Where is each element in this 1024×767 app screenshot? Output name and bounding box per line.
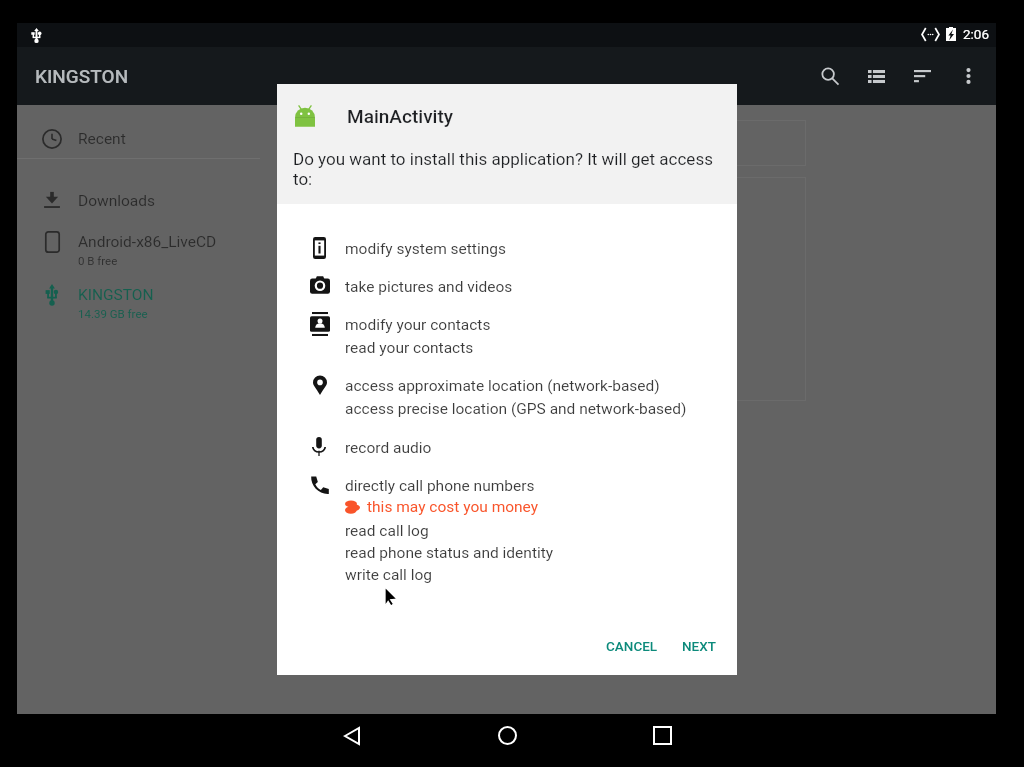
button[interactable]: 1:54 PM [300,177,595,401]
staticText: take pictures and videos [345,278,513,296]
staticText: Volum… [623,137,678,155]
button[interactable]: MainActivity… [300,120,595,166]
button[interactable]: Sort [899,53,945,99]
button[interactable]: Home [480,709,534,762]
staticText: Recent [78,130,126,148]
button[interactable]: CANCEL [591,629,673,663]
staticText: KINGSTON [78,286,154,304]
staticText: 14.39 GB free [78,307,148,320]
staticText: Do you want to install this application?… [293,149,723,189]
staticText: modify your contacts read your contacts [345,316,491,357]
button[interactable]: Back [325,709,379,762]
staticText: 2:06 [963,26,990,42]
button[interactable]: NEXT [667,629,731,663]
staticText: directly call phone numbers [345,477,535,495]
staticText: record audio [345,439,432,457]
button[interactable]: Recent apps [635,709,689,762]
staticText: modify system settings [345,240,506,258]
staticText: 1:54 PM [316,377,364,392]
button[interactable]: Search [807,53,853,99]
staticText: access approximate location (network-bas… [345,377,687,418]
staticText: Android-x86_LiveCD [78,233,217,251]
staticText: Downloads [78,192,156,210]
button[interactable]: Volum… [607,120,806,166]
staticText: MainActivity… [316,137,411,155]
staticText: MainActivity [347,105,453,127]
staticText: KINGSTON [35,65,129,87]
staticText: this may cost you money [367,498,539,516]
staticText: read call log read phone status and iden… [345,522,554,584]
button[interactable]: Grid view [853,53,899,99]
button[interactable]: More options [945,53,991,99]
button[interactable]: 1:46 PM [607,177,806,401]
staticText: 0 B free [78,254,118,267]
staticText: 1:46 PM [623,377,671,392]
